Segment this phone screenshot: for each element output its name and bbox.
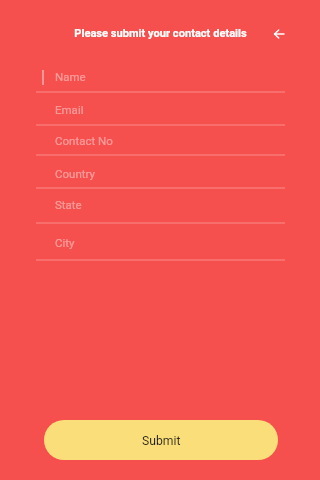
button[interactable]: Email [0,93,320,126]
button[interactable]: Submit [44,420,278,460]
staticText: Contact No [55,134,113,147]
button[interactable]: Country [0,157,320,189]
button[interactable]: Back [267,22,291,46]
staticText: State [55,198,82,211]
staticText: City [55,236,75,249]
staticText: Submit [142,434,181,448]
staticText: Please submit your contact details [74,27,247,40]
staticText: Country [55,167,95,180]
staticText: Name [55,70,86,83]
button[interactable]: Name [0,62,320,93]
staticText: Email [55,103,84,116]
button[interactable]: Contact No [0,125,320,156]
button[interactable]: State [0,188,320,224]
button[interactable]: City [0,224,320,261]
